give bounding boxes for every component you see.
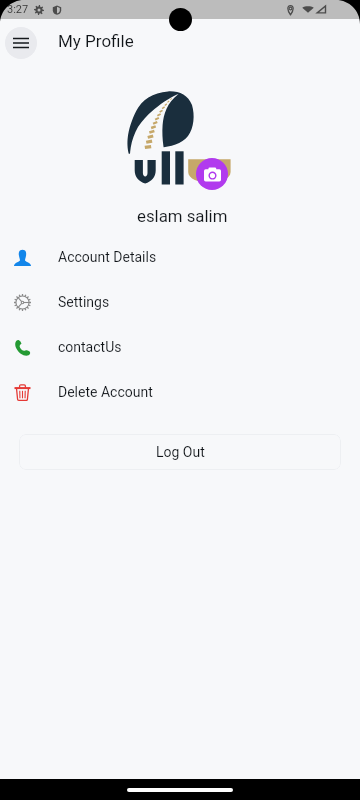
staticText: Delete Account	[58, 384, 153, 400]
staticText: contactUs	[58, 339, 122, 355]
button[interactable]: Delete Account	[0, 369, 360, 414]
button[interactable]: Change profile picture	[196, 158, 228, 190]
staticText: Log Out	[156, 444, 205, 460]
staticText: My Profile	[58, 31, 134, 51]
staticText: Settings	[58, 294, 110, 310]
staticText: 3:27	[7, 3, 29, 16]
button[interactable]: Open navigation menu	[5, 27, 37, 59]
staticText: Account Details	[58, 249, 157, 265]
button[interactable]: contactUs	[0, 324, 360, 369]
button[interactable]: Account Details	[0, 234, 360, 279]
button[interactable]: Log Out	[19, 434, 341, 470]
button[interactable]: Settings	[0, 279, 360, 324]
staticText: eslam salim	[137, 206, 228, 226]
